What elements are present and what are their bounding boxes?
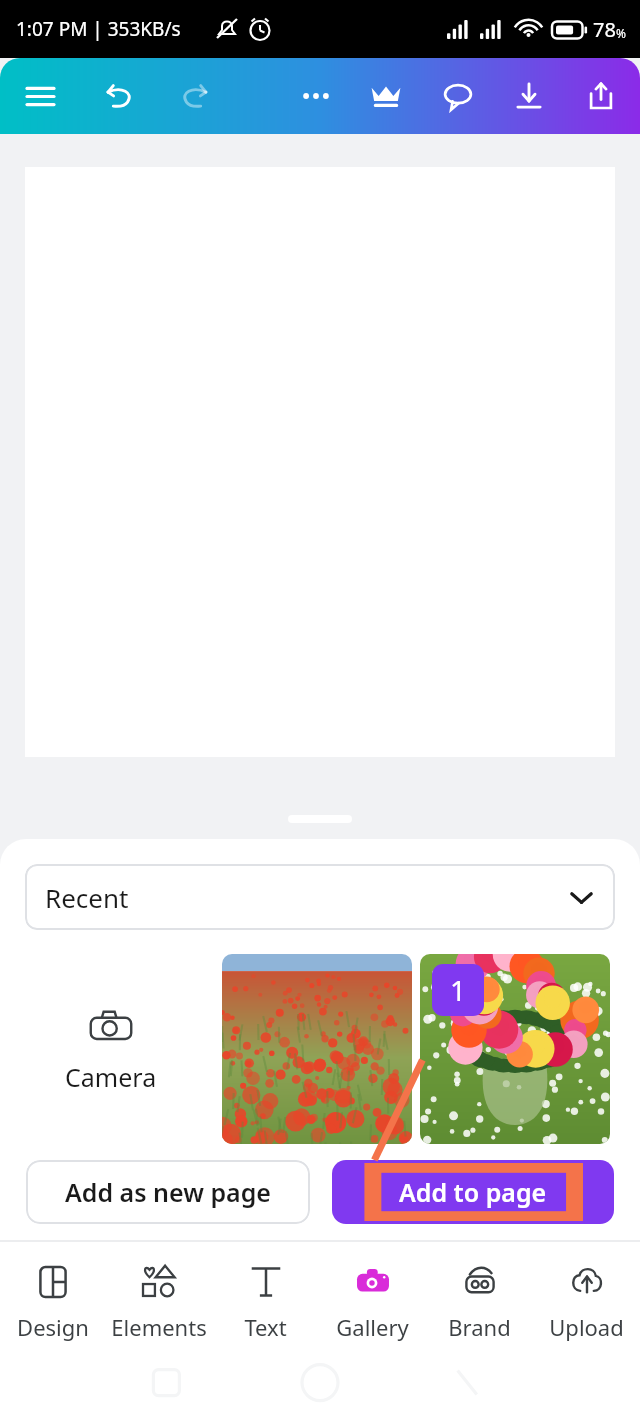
- staticText: Recent: [45, 880, 129, 915]
- button[interactable]: Elements: [106, 1242, 212, 1354]
- button[interactable]: Comments: [432, 70, 484, 122]
- button[interactable]: Camera: [0, 952, 222, 1146]
- button[interactable]: Add as new page: [26, 1160, 310, 1224]
- staticText: Add to page: [399, 1175, 547, 1209]
- button[interactable]: Add to page: [332, 1160, 614, 1224]
- staticText: Add as new page: [65, 1175, 271, 1209]
- button[interactable]: Text: [212, 1242, 319, 1354]
- staticText: Camera: [65, 1060, 157, 1094]
- button[interactable]: Download: [503, 70, 555, 122]
- staticText: %: [616, 25, 626, 41]
- button[interactable]: Design: [0, 1242, 106, 1354]
- button[interactable]: Gallery: [319, 1242, 426, 1354]
- staticText: 1:07 PM | 353KB/s: [16, 16, 181, 42]
- button[interactable]: Share: [575, 70, 627, 122]
- staticText: Upload: [549, 1312, 624, 1342]
- staticText: Design: [17, 1312, 89, 1342]
- button[interactable]: Recent: [25, 864, 615, 930]
- staticText: 1: [450, 971, 467, 1009]
- staticText: Brand: [448, 1312, 511, 1342]
- button[interactable]: Menu: [14, 70, 66, 122]
- staticText: Gallery: [336, 1312, 409, 1342]
- staticText: Elements: [111, 1312, 207, 1342]
- staticText: 78: [593, 16, 616, 43]
- button[interactable]: 1: [420, 954, 610, 1144]
- staticText: Text: [244, 1312, 287, 1342]
- button[interactable]: [222, 954, 412, 1144]
- button[interactable]: Upload: [533, 1242, 640, 1354]
- button[interactable]: More options: [290, 70, 342, 122]
- button[interactable]: Redo: [168, 70, 220, 122]
- button[interactable]: Premium: [360, 70, 412, 122]
- button[interactable]: Undo: [93, 70, 145, 122]
- button[interactable]: Brand: [426, 1242, 533, 1354]
